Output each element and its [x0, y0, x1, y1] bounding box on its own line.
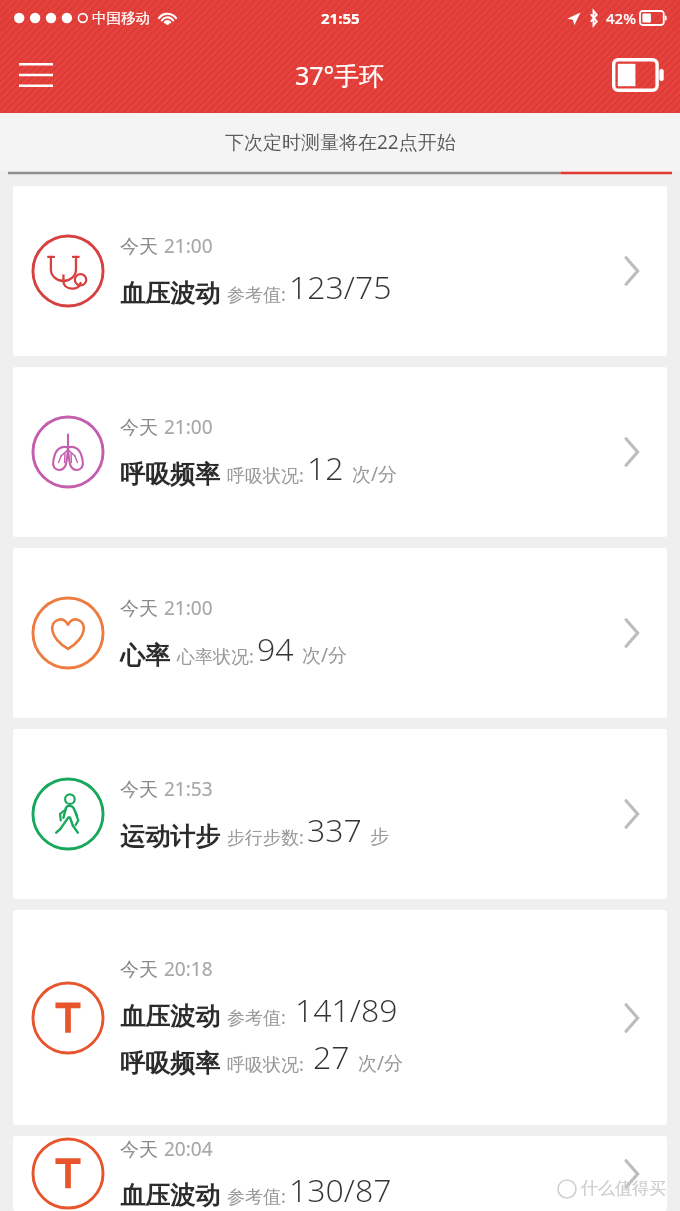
- staticText: 37°手环: [295, 58, 385, 92]
- staticText: 123/75: [289, 265, 392, 309]
- staticText: 21:00: [164, 595, 213, 621]
- button[interactable]: 今天: [13, 548, 667, 718]
- staticText: 20:04: [164, 1136, 213, 1162]
- staticText: 今天: [120, 416, 158, 440]
- staticText: 参考值:: [227, 1005, 286, 1030]
- staticText: 血压波动: [120, 278, 220, 309]
- staticText: 141/89: [295, 988, 398, 1032]
- staticText: 今天: [120, 235, 158, 259]
- staticText: 21:00: [164, 233, 213, 259]
- staticText: 42%: [606, 8, 636, 28]
- staticText: 21:00: [164, 414, 213, 440]
- staticText: 参考值:: [227, 282, 286, 307]
- staticText: 呼吸频率: [120, 459, 220, 490]
- staticText: 心率状况:: [177, 644, 254, 669]
- staticText: 参考值:: [227, 1184, 286, 1209]
- staticText: 次/分: [358, 1050, 404, 1076]
- staticText: 呼吸状况:: [227, 1052, 304, 1077]
- button[interactable]: 今天: [13, 910, 667, 1125]
- staticText: 12: [307, 446, 344, 490]
- button[interactable]: Battery: [606, 47, 670, 103]
- staticText: 次/分: [302, 642, 348, 668]
- staticText: 今天: [120, 1138, 158, 1162]
- button[interactable]: Menu: [8, 47, 64, 103]
- button[interactable]: 今天: [13, 186, 667, 356]
- staticText: 血压波动: [120, 1001, 220, 1032]
- staticText: 次/分: [352, 461, 398, 487]
- staticText: 中国移动: [92, 9, 150, 27]
- staticText: 130/87: [289, 1168, 392, 1211]
- staticText: 今天: [120, 778, 158, 802]
- staticText: 呼吸状况:: [227, 463, 304, 488]
- staticText: 呼吸频率: [120, 1048, 220, 1079]
- staticText: 21:55: [321, 8, 360, 28]
- button[interactable]: 今天: [13, 729, 667, 899]
- staticText: 心率: [120, 640, 170, 671]
- button[interactable]: 今天: [13, 1136, 667, 1211]
- staticText: 今天: [120, 958, 158, 982]
- button[interactable]: 今天: [13, 367, 667, 537]
- staticText: 步: [370, 825, 389, 849]
- staticText: 运动计步: [120, 821, 220, 852]
- staticText: 血压波动: [120, 1180, 220, 1211]
- staticText: 什么值得买: [581, 1178, 666, 1199]
- staticText: 21:53: [164, 776, 213, 802]
- staticText: 27: [313, 1035, 350, 1079]
- staticText: 今天: [120, 597, 158, 621]
- staticText: 20:18: [164, 956, 213, 982]
- staticText: 下次定时测量将在22点开始: [225, 129, 456, 155]
- staticText: 337: [307, 808, 362, 852]
- staticText: 步行步数:: [227, 825, 304, 850]
- staticText: 94: [257, 627, 294, 671]
